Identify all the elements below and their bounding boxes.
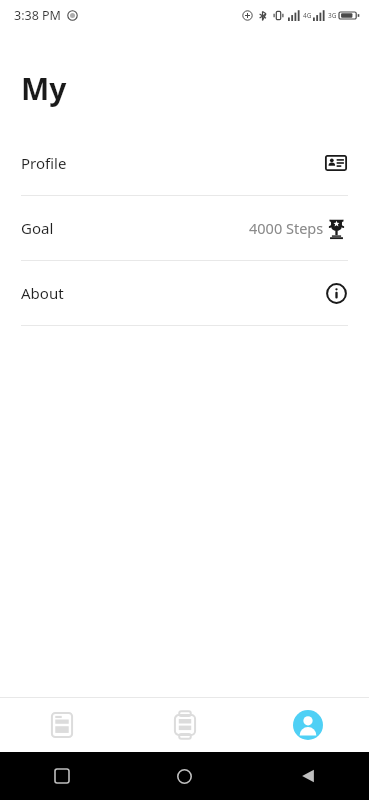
staticText: 3:38 PM xyxy=(14,7,61,24)
staticText: Profile xyxy=(21,153,67,173)
button[interactable]: About xyxy=(0,261,369,325)
button[interactable]: Watch xyxy=(123,698,246,752)
other: Profile xyxy=(325,152,347,174)
other: About xyxy=(326,283,347,304)
staticText: My xyxy=(21,68,67,109)
staticText: Goal xyxy=(21,218,54,238)
button[interactable]: Profile xyxy=(0,131,369,195)
staticText: 4G xyxy=(303,11,312,20)
button[interactable]: Back xyxy=(246,752,369,800)
staticText: 4000 Steps xyxy=(249,218,324,238)
other: Goal xyxy=(325,217,348,240)
button[interactable]: Recents xyxy=(0,752,123,800)
button[interactable]: Goal xyxy=(0,196,369,260)
staticText: About xyxy=(21,283,64,303)
staticText: 3G xyxy=(328,11,337,20)
button[interactable]: Phone xyxy=(0,698,123,752)
button[interactable]: Profile tab xyxy=(246,698,369,752)
button[interactable]: Home xyxy=(123,752,246,800)
